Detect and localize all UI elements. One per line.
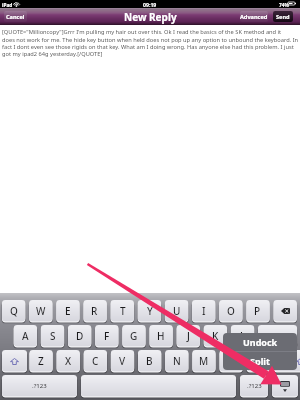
button[interactable]: Undock [223, 333, 297, 370]
button[interactable]: V [111, 350, 134, 372]
button[interactable]: J [177, 325, 200, 347]
staticText: Y [147, 304, 153, 318]
staticText: X [65, 354, 72, 368]
button[interactable]: U [165, 300, 188, 322]
staticText: H [157, 329, 165, 343]
staticText: Advanced [240, 13, 268, 21]
staticText: K [212, 329, 219, 343]
staticText: O [227, 304, 235, 318]
staticText: M [199, 354, 209, 368]
staticText: Z [38, 354, 44, 368]
staticText: Undock [243, 336, 278, 348]
button[interactable]: H [149, 325, 172, 347]
button[interactable]: .?123 [2, 375, 77, 397]
staticText: C [92, 354, 99, 368]
staticText: T [120, 304, 126, 318]
button[interactable]: Z [29, 350, 52, 372]
button[interactable]: P [246, 300, 269, 322]
staticText: D [76, 329, 84, 343]
button[interactable]: return [258, 325, 297, 347]
staticText: S [50, 329, 56, 343]
staticText: U [173, 304, 181, 318]
button[interactable]: O [219, 300, 242, 322]
staticText: .?123 [32, 382, 47, 390]
button[interactable]: I [192, 300, 215, 322]
staticText: R [91, 304, 98, 318]
staticText: A [22, 329, 29, 343]
button[interactable]: Shift [2, 350, 27, 372]
staticText: [QUOTE="Millioncopy"]Grrr I'm pulling my… [2, 28, 300, 57]
button[interactable]: . [247, 350, 270, 372]
staticText: L [240, 329, 246, 343]
button[interactable]: , [219, 350, 242, 372]
staticText: E [65, 304, 71, 318]
button[interactable]: C [84, 350, 107, 372]
button[interactable]: S [41, 325, 64, 347]
staticText: 74% [279, 2, 289, 9]
button[interactable]: X [57, 350, 80, 372]
staticText: .?123 [247, 382, 262, 390]
button[interactable]: A [14, 325, 37, 347]
staticText: F [104, 329, 110, 343]
staticText: . [257, 355, 260, 367]
button[interactable]: Advanced [240, 11, 268, 22]
button[interactable]: Shift [274, 350, 300, 372]
button[interactable]: Cancel [4, 11, 27, 22]
staticText: Cancel [6, 13, 25, 21]
staticText: B [146, 354, 153, 368]
button[interactable] [81, 375, 236, 397]
button[interactable]: R [83, 300, 106, 322]
button[interactable]: T [111, 300, 134, 322]
button[interactable]: K [204, 325, 227, 347]
staticText: return [267, 331, 289, 341]
staticText: N [173, 354, 181, 368]
staticText: New Reply [124, 10, 177, 24]
button[interactable]: M [192, 350, 215, 372]
button[interactable]: Y [138, 300, 161, 322]
button[interactable]: E [56, 300, 79, 322]
staticText: I [202, 304, 206, 318]
button[interactable]: Backspace [274, 300, 297, 322]
staticText: , [229, 355, 232, 367]
button[interactable]: B [138, 350, 161, 372]
button[interactable]: Undock [223, 333, 297, 351]
staticText: Send [276, 13, 290, 21]
staticText: Q [10, 304, 18, 318]
button[interactable]: N [165, 350, 188, 372]
button[interactable]: Split [223, 352, 297, 370]
staticText: Split [250, 355, 270, 367]
button[interactable]: Hide keyboard [272, 375, 298, 397]
staticText: P [254, 304, 261, 318]
staticText: G [130, 329, 138, 343]
button[interactable]: G [122, 325, 145, 347]
staticText: J [187, 329, 190, 343]
button[interactable]: F [95, 325, 118, 347]
button[interactable]: .?123 [240, 375, 268, 397]
button[interactable]: D [68, 325, 91, 347]
staticText: V [119, 354, 126, 368]
staticText: 09:19 [143, 1, 157, 8]
button[interactable]: W [29, 300, 52, 322]
staticText: W [36, 304, 46, 318]
button[interactable]: Q [2, 300, 25, 322]
button[interactable]: Send [273, 11, 293, 22]
button[interactable]: L [231, 325, 254, 347]
staticText: iPad [2, 2, 13, 9]
